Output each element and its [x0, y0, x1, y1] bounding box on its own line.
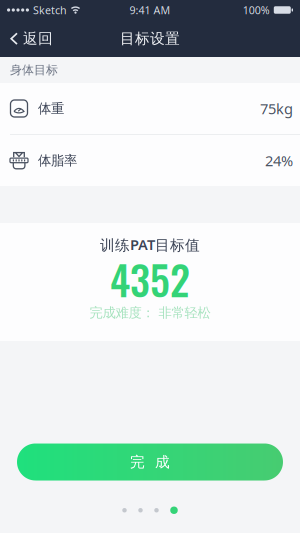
- staticText: 9:41 AM: [129, 3, 170, 17]
- button[interactable]: 体脂率: [0, 135, 300, 186]
- staticText: 训练PAT目标值: [100, 235, 200, 254]
- button[interactable]: 完 成: [17, 443, 283, 480]
- staticText: 完成难度： 非常轻松: [89, 305, 210, 321]
- staticText: 目标设置: [120, 29, 180, 47]
- staticText: 24%: [265, 151, 293, 170]
- staticText: 100%: [243, 3, 270, 17]
- staticText: 返回: [23, 29, 53, 47]
- button[interactable]: 返回: [0, 20, 63, 57]
- staticText: 体重: [38, 100, 64, 117]
- staticText: 75kg: [260, 99, 293, 118]
- staticText: 身体目标: [10, 63, 58, 77]
- staticText: Sketch: [33, 3, 67, 17]
- staticText: 体脂率: [38, 152, 77, 169]
- staticText: 4352: [110, 249, 190, 309]
- staticText: 完 成: [130, 453, 170, 471]
- button[interactable]: 体重: [0, 83, 300, 134]
